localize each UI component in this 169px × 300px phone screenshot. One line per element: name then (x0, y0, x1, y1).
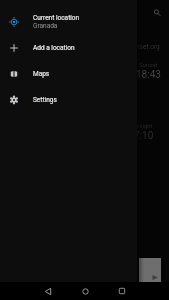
staticText: Sunset (139, 61, 158, 68)
staticText: 7:10 (134, 130, 154, 142)
staticText: 18:43 (136, 69, 161, 81)
button[interactable]: Recents (110, 282, 134, 300)
staticText: Add a location (33, 44, 75, 52)
staticText: wilight (135, 122, 153, 129)
button[interactable]: Maps (0, 61, 137, 87)
button[interactable]: Home (73, 282, 97, 300)
staticText: Maps (33, 70, 50, 78)
button[interactable]: Add a location (0, 35, 137, 61)
button[interactable]: Search (147, 3, 165, 21)
button[interactable]: Settings (0, 87, 137, 113)
button[interactable]: Current location (0, 9, 137, 35)
staticText: Current location (33, 14, 80, 22)
button[interactable]: Back (36, 282, 60, 300)
staticText: Granada (33, 22, 58, 30)
staticText: Settings (33, 96, 57, 104)
staticText: nset.org (136, 43, 160, 51)
